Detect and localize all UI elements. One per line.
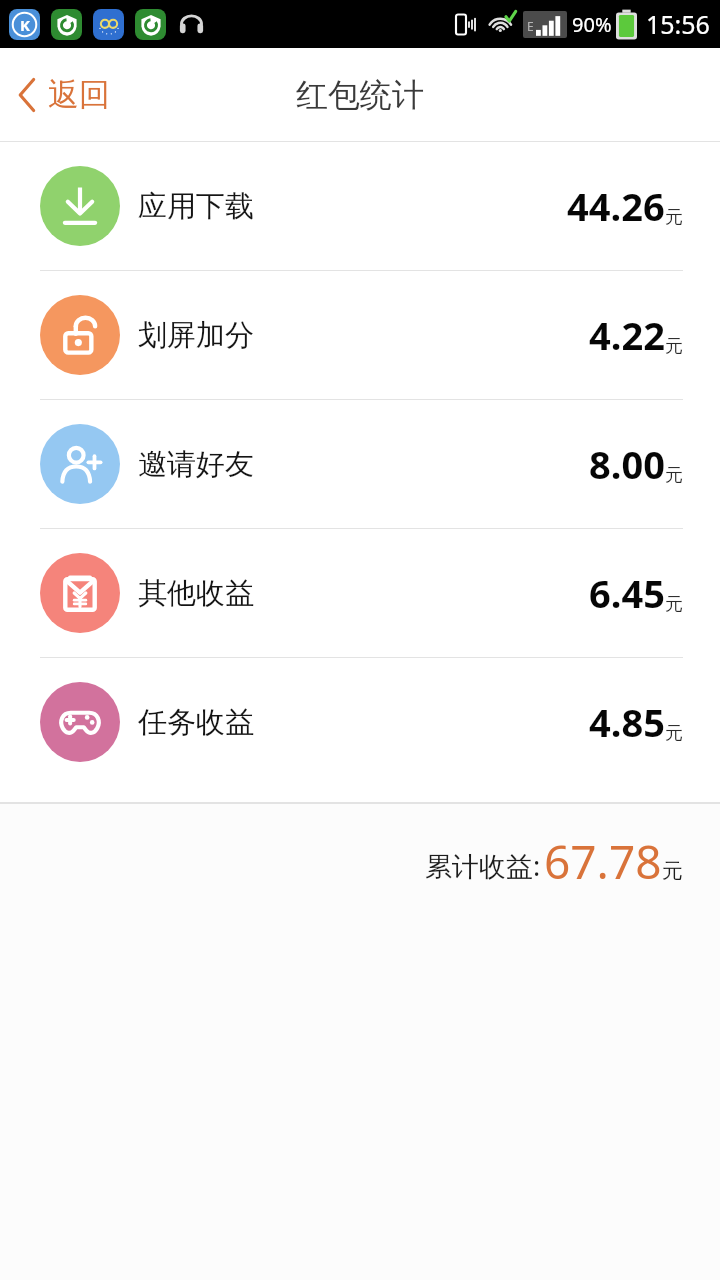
staticText: 元 [665, 722, 683, 745]
staticText: 应用下载 [138, 188, 254, 225]
staticText: 元 [665, 464, 683, 487]
staticText: 元 [662, 858, 683, 884]
staticText: 任务收益 [138, 704, 254, 741]
staticText: 8.00 [589, 438, 665, 490]
staticText: 15:56 [646, 7, 710, 41]
staticText: 邀请好友 [138, 446, 254, 483]
button[interactable]: 应用下载 [0, 142, 720, 270]
staticText: 6.45 [589, 567, 665, 619]
other: 返回 [16, 77, 37, 113]
staticText: 90% [572, 11, 612, 38]
button[interactable]: 任务收益 [0, 658, 720, 786]
staticText: 元 [665, 335, 683, 358]
staticText: 67.78 [544, 830, 662, 893]
staticText: 4.85 [589, 696, 665, 748]
staticText: 44.26 [567, 180, 665, 232]
button[interactable]: 其他收益 [0, 529, 720, 657]
button[interactable]: 划屏加分 [0, 271, 720, 399]
staticText: 红包统计 [296, 75, 424, 115]
other: Ringer [454, 12, 479, 37]
staticText: 划屏加分 [138, 317, 254, 354]
staticText: E [527, 18, 534, 34]
staticText: 元 [665, 593, 683, 616]
button[interactable]: 邀请好友 [0, 400, 720, 528]
staticText: 累计收益: [425, 847, 541, 884]
staticText: K [20, 15, 30, 35]
staticText: 其他收益 [138, 575, 254, 612]
staticText: 元 [665, 206, 683, 229]
staticText: 返回 [48, 75, 110, 114]
button[interactable]: 返回 [0, 63, 130, 126]
staticText: 4.22 [589, 309, 665, 361]
